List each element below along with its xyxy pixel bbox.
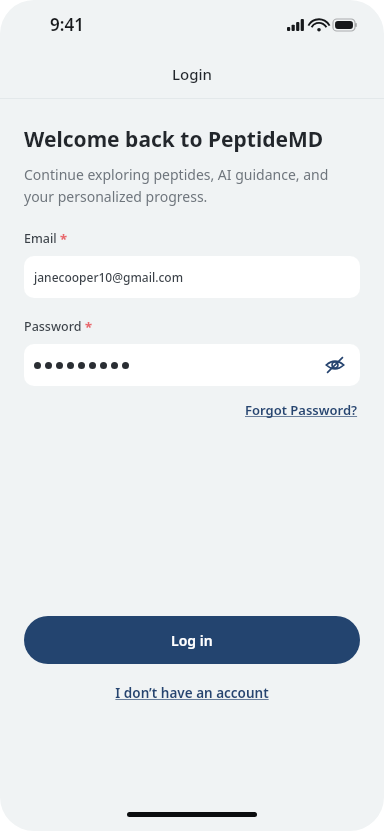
staticText: Welcome back to PeptideMD [24, 125, 324, 154]
button[interactable]: Log in [24, 616, 360, 664]
button[interactable]: I don’t have an account [111, 681, 273, 705]
staticText: * [85, 318, 93, 336]
button[interactable]: Forgot Password? [243, 398, 360, 422]
button[interactable]: Show password [24, 344, 360, 386]
staticText: Login [172, 64, 212, 84]
staticText: * [60, 230, 68, 248]
staticText: Forgot Password? [245, 401, 358, 419]
staticText: Password [24, 318, 82, 335]
staticText: I don’t have an account [115, 684, 269, 702]
staticText: Log in [171, 631, 213, 650]
staticText: Continue exploring peptides, AI guidance… [24, 165, 350, 206]
staticText: Email [24, 230, 57, 247]
button[interactable]: janecooper10@gmail.com [24, 256, 360, 298]
button[interactable]: Show password [320, 350, 350, 380]
staticText: 9:41 [50, 13, 84, 36]
staticText: janecooper10@gmail.com [34, 269, 183, 285]
